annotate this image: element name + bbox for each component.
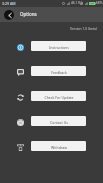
button[interactable]: Contact Us (0, 108, 103, 133)
staticText: Contact Us (50, 120, 68, 125)
staticText: 68% (96, 1, 103, 5)
button[interactable]: Back (4, 10, 14, 20)
staticText: Check For Update (44, 95, 74, 100)
staticText: 46.1 K/s (71, 1, 83, 5)
staticText: 3:29 AM (2, 1, 16, 6)
staticText: Version 1.0 (beta) (70, 26, 97, 30)
button[interactable]: Check For Update (0, 83, 103, 108)
staticText: Instructions (49, 45, 69, 50)
button[interactable]: Instructions (0, 33, 103, 58)
staticText: Options (20, 11, 37, 17)
button[interactable]: Feedback (0, 58, 103, 83)
staticText: Withdraw (51, 145, 67, 150)
staticText: Feedback (51, 70, 67, 75)
button[interactable]: Withdraw (0, 133, 103, 158)
